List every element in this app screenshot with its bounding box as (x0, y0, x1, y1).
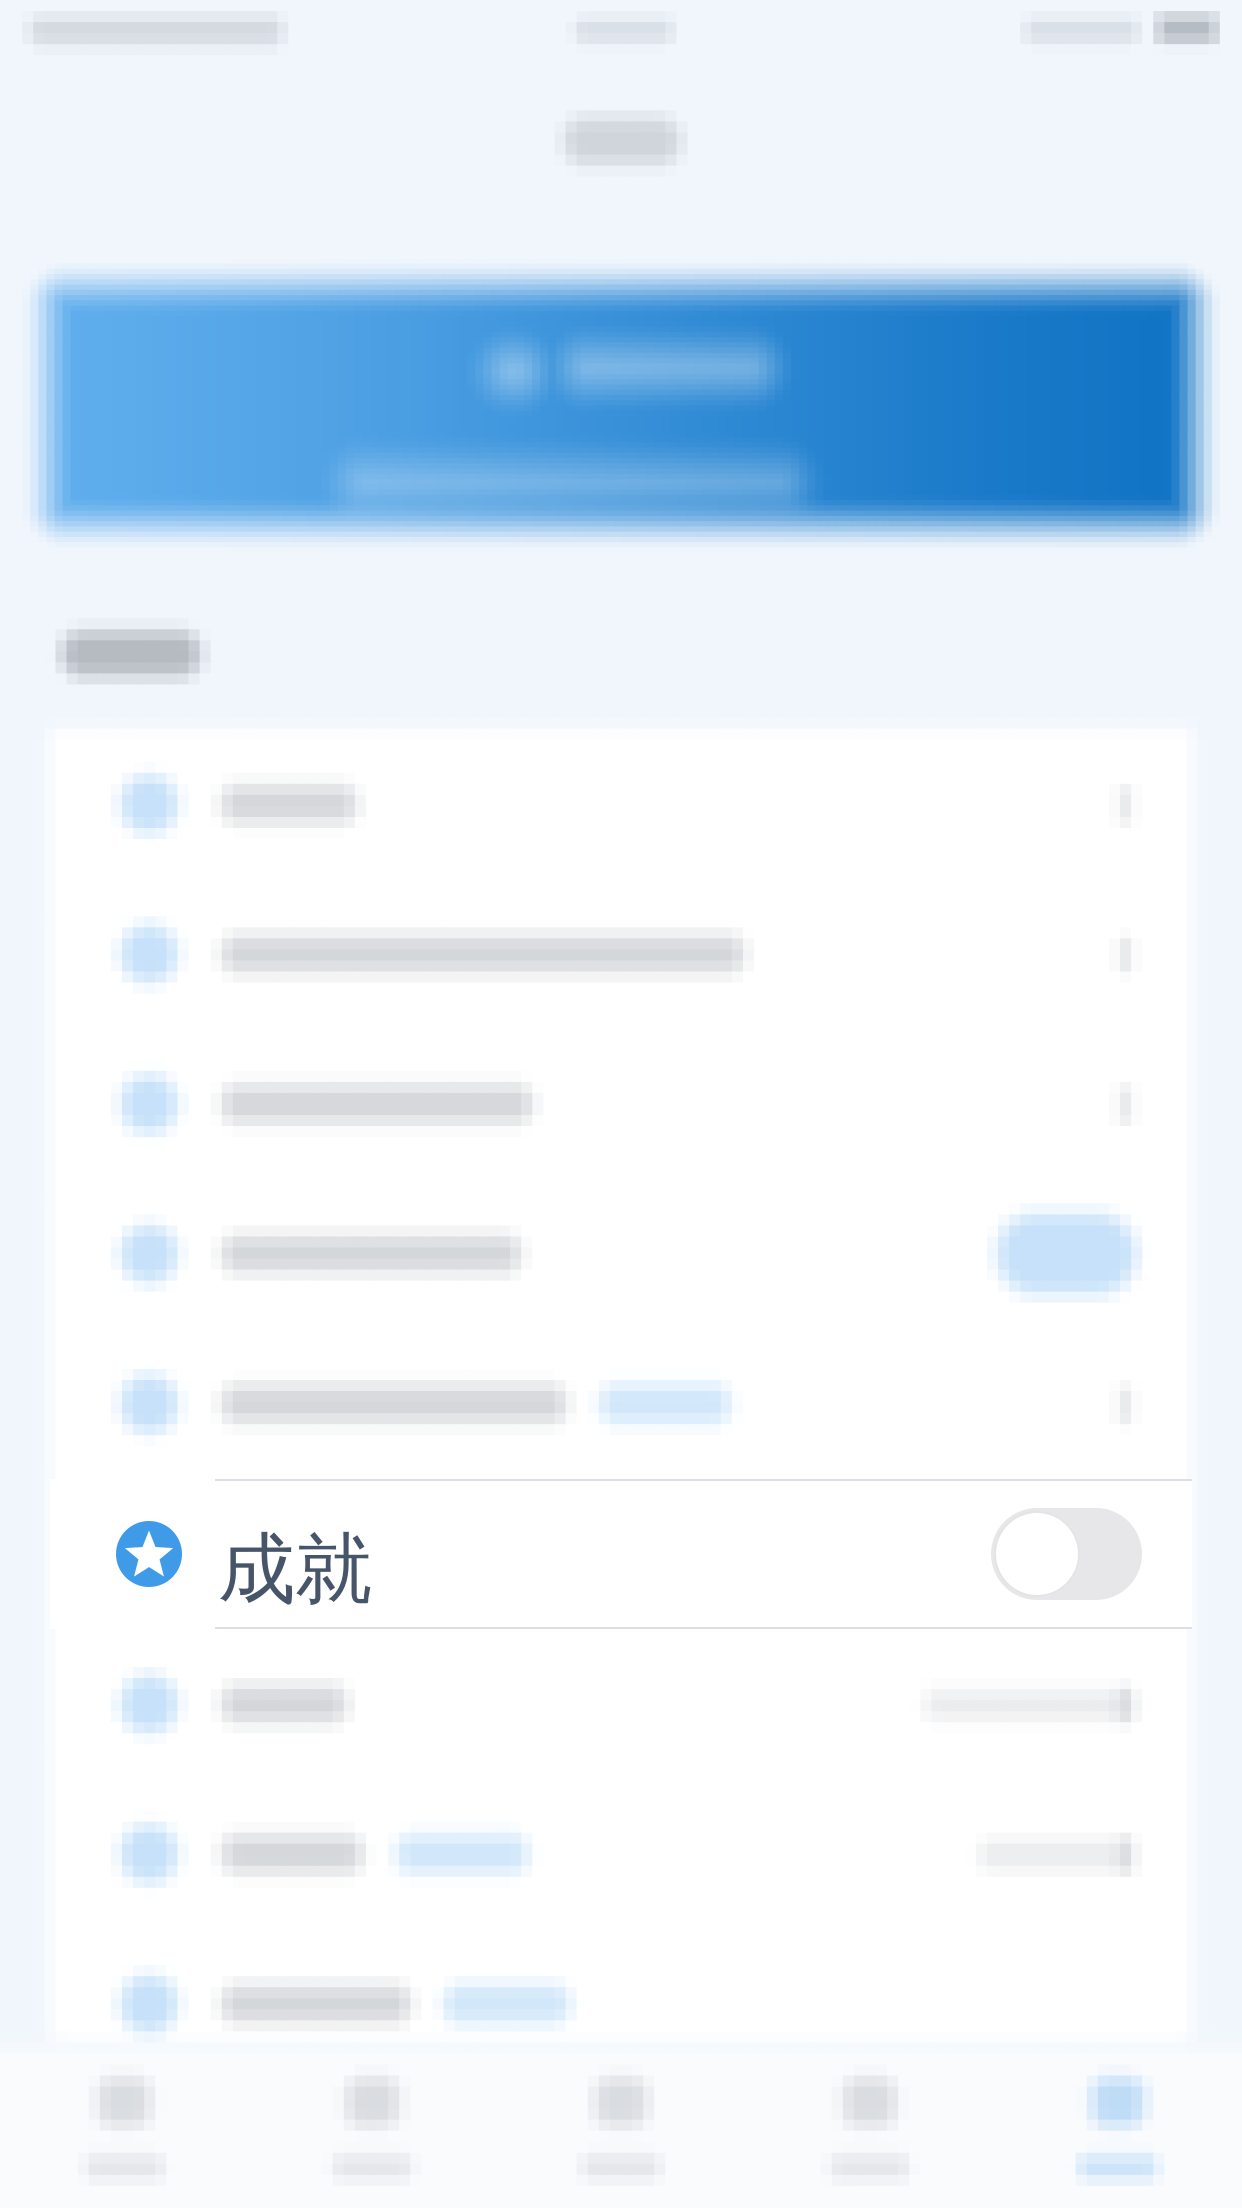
button[interactable]: 成就 (50, 1479, 1192, 1629)
button[interactable]: Promotion banner (96, 1272, 1242, 1509)
button[interactable]: Setting row 4 (98, 2164, 1240, 2208)
button[interactable]: Setting row 2 (98, 1864, 1240, 2014)
staticText: 成就 (218, 1522, 372, 1617)
button[interactable]: Setting row 1 (98, 1714, 1240, 1864)
button[interactable]: Setting row 3 (98, 2014, 1240, 2164)
